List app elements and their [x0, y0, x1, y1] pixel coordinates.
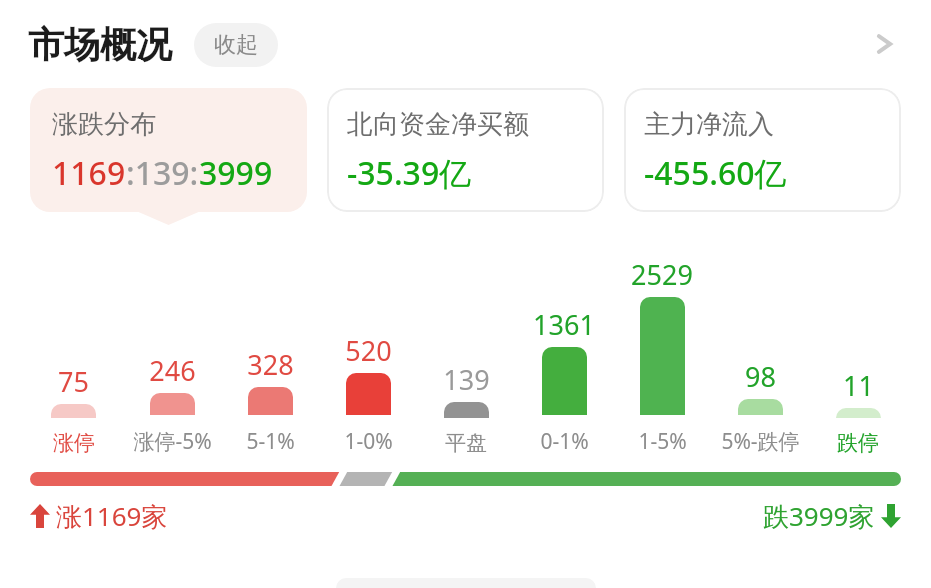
button[interactable]: 涨跌分布 — [30, 88, 307, 212]
staticText: 0-1% — [540, 427, 589, 456]
staticText: 98 — [745, 358, 776, 395]
button[interactable]: 更多 — [867, 27, 901, 61]
staticText: 5%-跌停 — [721, 427, 800, 456]
staticText: 1-5% — [638, 427, 687, 456]
staticText: 市场概况 — [28, 22, 172, 67]
button[interactable]: 主力净流入 — [624, 88, 901, 212]
staticText: 北向资金净买额 — [347, 108, 529, 141]
staticText: 涨跌分布 — [52, 108, 156, 141]
staticText: 246 — [149, 352, 196, 389]
staticText: 75 — [58, 363, 89, 400]
staticText: 3999 — [199, 151, 273, 195]
staticText: 涨停-5% — [133, 427, 212, 456]
staticText: 139 — [443, 361, 490, 398]
staticText: 520 — [345, 332, 392, 369]
button[interactable]: 收起 — [194, 23, 278, 67]
staticText: 主力净流入 — [644, 108, 774, 141]
staticText: 5-1% — [246, 427, 295, 456]
staticText: 收起 — [214, 31, 258, 59]
staticText: 11 — [843, 367, 874, 404]
staticText: 328 — [247, 346, 294, 383]
staticText: -455.60亿 — [644, 151, 787, 195]
staticText: :139: — [126, 151, 199, 195]
staticText: 涨停 — [53, 430, 95, 456]
staticText: 平盘 — [445, 430, 487, 456]
staticText: 跌停 — [837, 430, 879, 456]
button[interactable]: 北向资金净买额 — [327, 88, 604, 212]
staticText: 跌3999家 — [763, 498, 875, 534]
staticText: 1361 — [533, 306, 595, 343]
staticText: 2529 — [631, 256, 693, 293]
staticText: 涨1169家 — [56, 498, 168, 534]
staticText: 1169 — [52, 151, 126, 195]
staticText: 1-0% — [344, 427, 393, 456]
staticText: -35.39亿 — [347, 151, 472, 195]
